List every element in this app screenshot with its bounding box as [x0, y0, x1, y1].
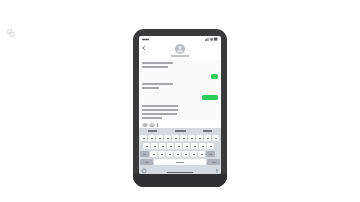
button[interactable] — [188, 135, 195, 141]
button[interactable] — [156, 135, 163, 141]
button[interactable] — [166, 128, 194, 134]
button[interactable] — [204, 135, 211, 141]
button[interactable] — [211, 74, 218, 79]
button[interactable] — [172, 135, 179, 141]
button[interactable] — [167, 143, 174, 149]
button[interactable] — [151, 143, 158, 149]
button[interactable] — [166, 151, 173, 157]
button[interactable] — [164, 135, 171, 141]
button[interactable] — [171, 44, 189, 57]
button[interactable] — [175, 143, 182, 149]
button[interactable] — [174, 151, 181, 157]
button[interactable] — [142, 83, 173, 91]
button[interactable] — [183, 143, 190, 149]
button[interactable] — [196, 135, 203, 141]
button[interactable]: Emoji — [141, 168, 146, 173]
button[interactable]: Voice input — [214, 168, 219, 173]
button[interactable] — [142, 105, 178, 120]
button[interactable] — [190, 151, 197, 157]
button[interactable] — [202, 95, 218, 100]
button[interactable] — [158, 151, 165, 157]
button[interactable] — [207, 143, 214, 149]
button[interactable] — [143, 143, 150, 149]
button[interactable]: Return — [207, 159, 220, 165]
button[interactable]: Back — [141, 45, 147, 51]
button[interactable] — [182, 151, 189, 157]
button[interactable]: Camera — [142, 122, 147, 127]
button[interactable] — [148, 135, 155, 141]
button[interactable] — [191, 143, 198, 149]
button[interactable] — [140, 135, 147, 141]
button[interactable] — [199, 143, 206, 149]
button[interactable]: Backspace — [206, 151, 215, 157]
button[interactable] — [159, 143, 166, 149]
button[interactable]: Space — [154, 159, 206, 165]
button[interactable] — [194, 128, 221, 134]
button[interactable] — [150, 151, 157, 157]
button[interactable] — [198, 151, 205, 157]
button[interactable] — [212, 135, 219, 141]
button[interactable]: Gallery — [149, 122, 154, 127]
button[interactable] — [142, 62, 173, 70]
button[interactable] — [139, 128, 166, 134]
button[interactable]: Numbers — [140, 159, 153, 165]
button[interactable] — [180, 135, 187, 141]
button[interactable]: Shift — [140, 151, 149, 157]
button[interactable] — [157, 122, 218, 127]
